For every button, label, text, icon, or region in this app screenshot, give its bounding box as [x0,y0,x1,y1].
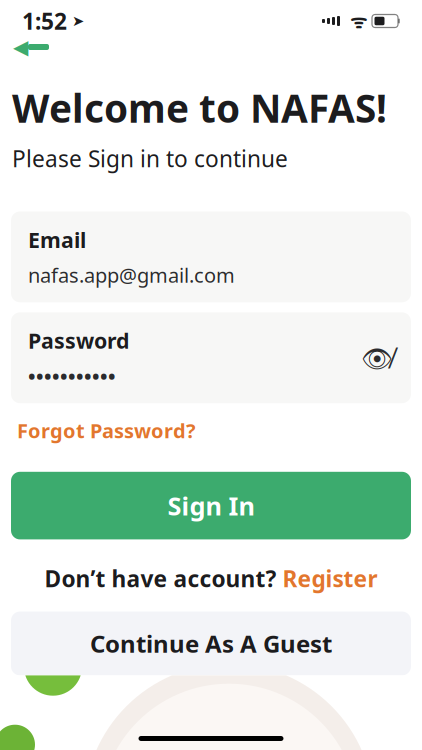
staticText: 1:52 [22,6,67,36]
staticText: nafas.app@gmail.com [28,262,235,288]
staticText: ••••••••••• [28,363,116,389]
staticText: 👁̸ [361,341,393,375]
staticText: Continue As A Guest [90,627,332,659]
button[interactable]: Sign In [11,472,411,539]
staticText: ᯤ [340,9,372,33]
button[interactable]: Don’t have account? [44,557,377,599]
staticText: Password [28,326,129,355]
staticText: Welcome to NAFAS! [12,82,387,133]
staticText: Please Sign in to continue [12,143,288,173]
button[interactable]: Forgot Password? [17,411,196,450]
button[interactable]: Back [4,32,58,62]
staticText: Email [28,225,86,254]
staticText: Sign In [167,489,254,522]
staticText: Forgot Password? [17,417,196,444]
staticText: ◀ [13,36,28,58]
staticText: Don’t have account? [44,563,276,593]
button[interactable]: Show password [360,341,394,375]
staticText: ➤ [67,13,84,29]
button[interactable]: Continue As A Guest [11,611,411,675]
staticText: Register [282,563,377,593]
